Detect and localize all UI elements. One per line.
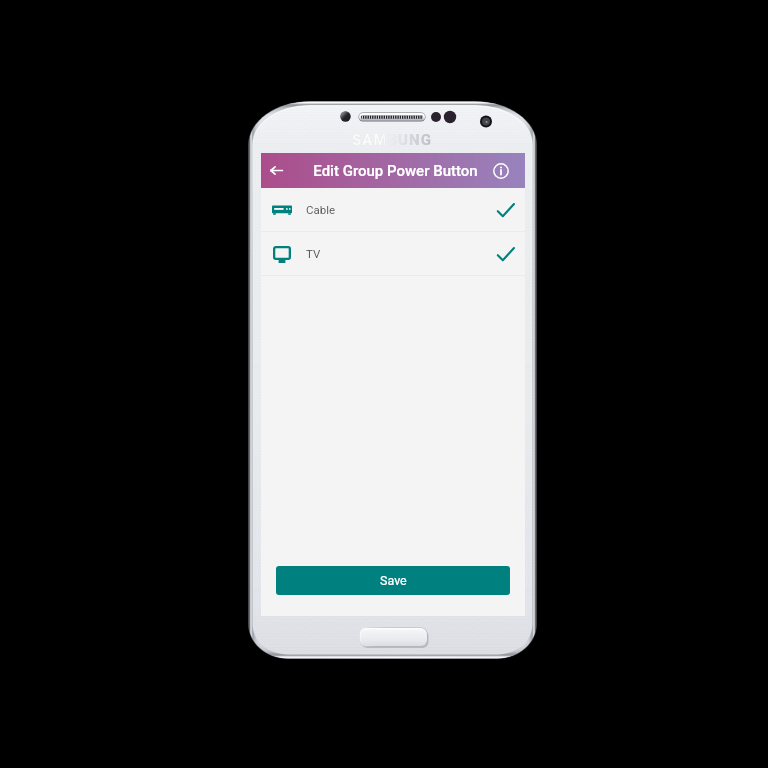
staticText: SAMSUNG bbox=[352, 131, 433, 149]
button[interactable]: TV bbox=[261, 232, 525, 275]
staticText: Edit Group Power Button bbox=[313, 162, 478, 180]
button[interactable]: Cable bbox=[261, 188, 525, 231]
staticText: TV bbox=[306, 247, 321, 260]
button[interactable]: Back bbox=[261, 153, 292, 188]
button[interactable]: Info bbox=[485, 153, 516, 188]
staticText: Cable bbox=[306, 203, 336, 216]
staticText: SAMSUNG bbox=[352, 131, 433, 149]
button[interactable]: Save bbox=[276, 566, 510, 595]
staticText: Save bbox=[380, 573, 407, 588]
